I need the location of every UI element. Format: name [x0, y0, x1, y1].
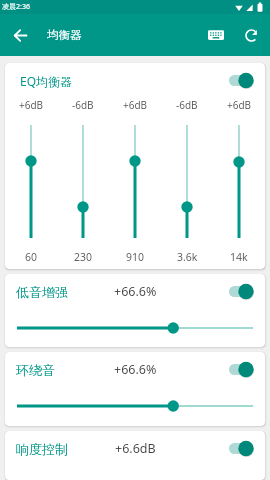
button[interactable]: [229, 440, 255, 457]
button[interactable]: [17, 399, 253, 413]
staticText: +66.6%: [114, 361, 157, 378]
staticText: +6dB: [19, 98, 44, 112]
staticText: +6dB: [123, 98, 148, 112]
button[interactable]: [229, 72, 255, 89]
staticText: 环绕音: [16, 362, 55, 378]
button[interactable]: [198, 14, 233, 56]
staticText: 14k: [230, 250, 248, 264]
staticText: 230: [74, 250, 93, 264]
button[interactable]: [233, 14, 270, 56]
staticText: EQ均衡器: [20, 73, 73, 89]
staticText: 凌晨2:36: [2, 2, 30, 12]
staticText: +66.6%: [114, 283, 157, 300]
staticText: -6dB: [72, 98, 94, 112]
staticText: +6.6dB: [115, 440, 156, 457]
staticText: 3.6k: [177, 250, 198, 264]
staticText: +6dB: [227, 98, 252, 112]
button[interactable]: [229, 283, 255, 300]
staticText: 910: [126, 250, 145, 264]
button[interactable]: [0, 14, 40, 56]
staticText: 60: [25, 250, 38, 264]
staticText: 均衡器: [47, 28, 82, 42]
staticText: 响度控制: [16, 441, 68, 457]
staticText: 低音增强: [16, 284, 68, 300]
button[interactable]: [229, 361, 255, 378]
staticText: -6dB: [176, 98, 198, 112]
button[interactable]: [17, 321, 253, 335]
